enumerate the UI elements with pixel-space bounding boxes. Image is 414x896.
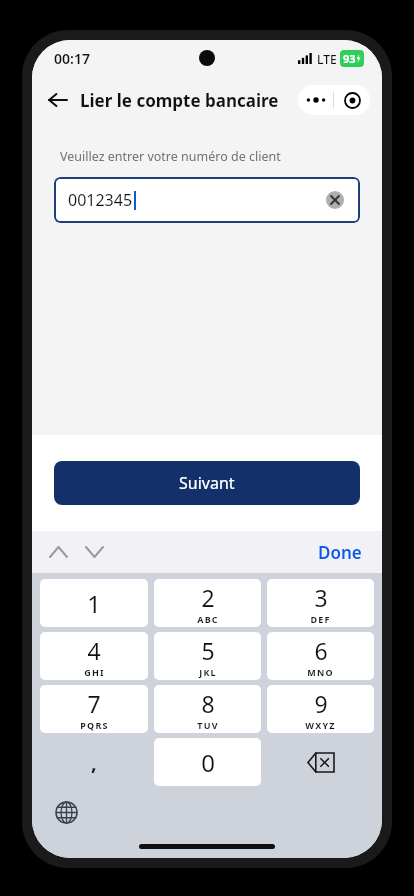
staticText: Done <box>318 541 362 564</box>
staticText: 93 <box>343 51 356 66</box>
button[interactable]: 1 <box>40 579 148 627</box>
staticText: Suivant <box>179 472 235 494</box>
staticText: 2 <box>201 582 215 613</box>
staticText: PQRS <box>80 719 109 731</box>
staticText: 0012345 <box>68 189 133 211</box>
button[interactable]: 8 <box>154 685 261 733</box>
button[interactable]: 9 <box>267 685 374 733</box>
button[interactable]: Suivant <box>54 461 360 505</box>
staticText: MNO <box>307 666 334 678</box>
button[interactable]: Back <box>40 82 76 118</box>
button[interactable]: 3 <box>267 579 374 627</box>
button[interactable]: Clear <box>322 187 348 213</box>
staticText: Lier le compte bancaire <box>80 89 279 112</box>
button[interactable]: Previous field <box>40 534 76 570</box>
staticText: Veuillez entrer votre numéro de client <box>60 148 281 165</box>
button[interactable]: Comma <box>40 738 148 786</box>
button[interactable]: 7 <box>40 685 148 733</box>
staticText: 8 <box>201 688 215 719</box>
staticText: LTE <box>317 51 337 67</box>
button[interactable]: Done <box>312 537 368 568</box>
button[interactable]: Change keyboard language <box>49 795 83 829</box>
button[interactable]: Close mini program <box>334 85 370 115</box>
button[interactable]: Next field <box>76 534 112 570</box>
staticText: JKL <box>199 666 217 678</box>
button[interactable]: 0 <box>154 738 261 786</box>
staticText: WXYZ <box>305 719 336 731</box>
button[interactable]: 5 <box>154 632 261 680</box>
staticText: ABC <box>197 613 219 625</box>
button[interactable]: More options <box>298 85 333 115</box>
staticText: GHI <box>84 666 105 678</box>
staticText: , <box>91 749 97 776</box>
staticText: 4 <box>87 635 101 666</box>
staticText: 9 <box>314 688 328 719</box>
staticText: DEF <box>310 613 331 625</box>
staticText: TUV <box>197 719 219 731</box>
button[interactable]: 2 <box>154 579 261 627</box>
button[interactable]: Backspace <box>267 738 374 786</box>
staticText: 1 <box>87 587 101 620</box>
staticText: 3 <box>314 582 328 613</box>
button[interactable]: 6 <box>267 632 374 680</box>
staticText: 7 <box>87 688 101 719</box>
staticText: 5 <box>201 635 215 666</box>
button[interactable]: 4 <box>40 632 148 680</box>
staticText: 00:17 <box>54 49 90 68</box>
staticText: 0 <box>201 746 215 779</box>
staticText: 6 <box>314 635 328 666</box>
button[interactable]: 0012345 <box>54 177 360 223</box>
